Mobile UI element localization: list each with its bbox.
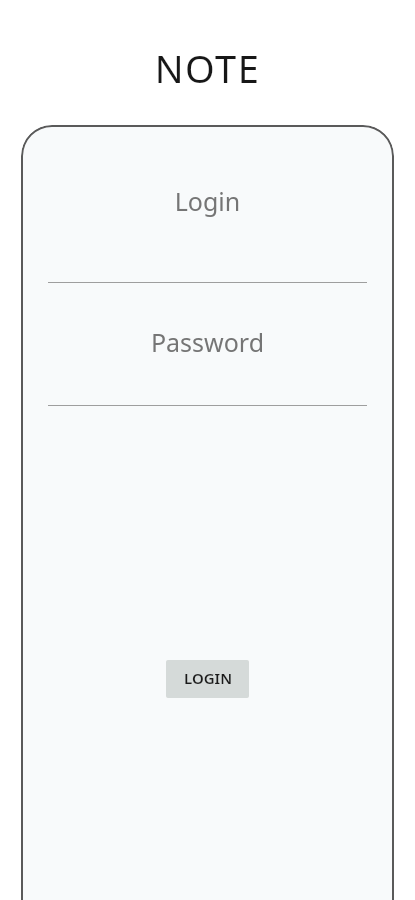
button[interactable]: Login (21, 171, 394, 283)
staticText: NOTE (0, 42, 415, 94)
staticText: Password (21, 325, 394, 359)
staticText: LOGIN (184, 668, 233, 688)
staticText: Login (21, 184, 394, 218)
button[interactable]: Password (21, 312, 394, 406)
button[interactable]: LOGIN (166, 660, 249, 698)
